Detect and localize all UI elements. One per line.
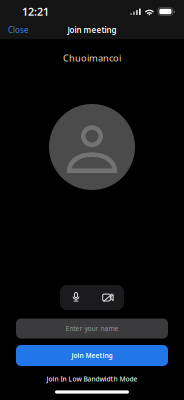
staticText: Join In Low Bandwidth Mode: [46, 375, 137, 383]
staticText: 12:21: [22, 4, 49, 19]
button[interactable]: Join In Low Bandwidth Mode: [46, 372, 137, 385]
staticText: Close: [8, 25, 29, 35]
button[interactable]: Enter your name: [16, 318, 168, 338]
button[interactable]: Close: [8, 20, 42, 40]
button[interactable]: Mute: [60, 285, 92, 310]
staticText: Enter your name: [65, 324, 118, 333]
staticText: Join Meeting: [71, 351, 112, 360]
button[interactable]: Join Meeting: [16, 345, 168, 366]
staticText: Chuoimancoi: [63, 52, 121, 64]
button[interactable]: Stop Video: [92, 285, 124, 310]
staticText: Join meeting: [67, 25, 116, 35]
